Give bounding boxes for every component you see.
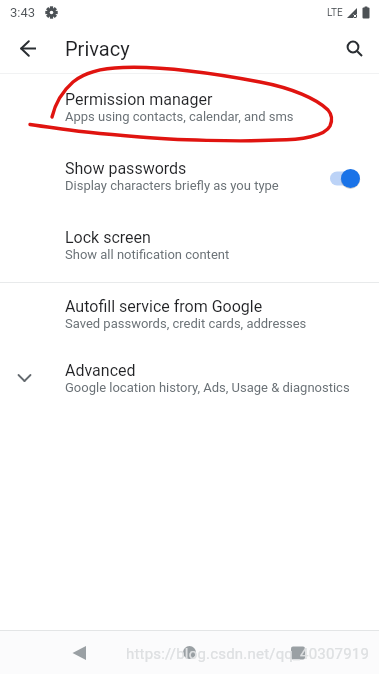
button[interactable] xyxy=(57,631,101,674)
button[interactable] xyxy=(167,631,211,674)
staticText: Permission manager xyxy=(65,90,213,109)
staticText: Autofill service from Google xyxy=(65,297,263,316)
button[interactable]: Show passwords xyxy=(0,159,379,193)
button[interactable]: Lock screen xyxy=(0,228,379,262)
button[interactable]: Permission manager xyxy=(0,90,379,124)
button[interactable] xyxy=(276,631,320,674)
button[interactable]: Advanced xyxy=(0,361,379,395)
button[interactable] xyxy=(330,169,360,188)
button[interactable] xyxy=(335,29,375,69)
staticText: Apps using contacts, calendar, and sms xyxy=(65,109,294,124)
staticText: Advanced xyxy=(65,361,136,380)
staticText: https://blog.csdn.net/qq_40307919 xyxy=(126,645,370,663)
staticText: Show passwords xyxy=(65,159,187,178)
staticText: Lock screen xyxy=(65,228,151,247)
staticText: Display characters briefly as you type xyxy=(65,178,279,193)
button[interactable]: Autofill service from Google xyxy=(0,297,379,331)
staticText: Show all notification content xyxy=(65,247,230,262)
button[interactable] xyxy=(7,27,51,71)
staticText: LTE xyxy=(327,7,343,19)
staticText: Privacy xyxy=(65,37,130,60)
staticText: Saved passwords, credit cards, addresses xyxy=(65,316,307,331)
staticText: 3:43 xyxy=(10,5,36,20)
staticText: Google location history, Ads, Usage & di… xyxy=(65,380,350,395)
